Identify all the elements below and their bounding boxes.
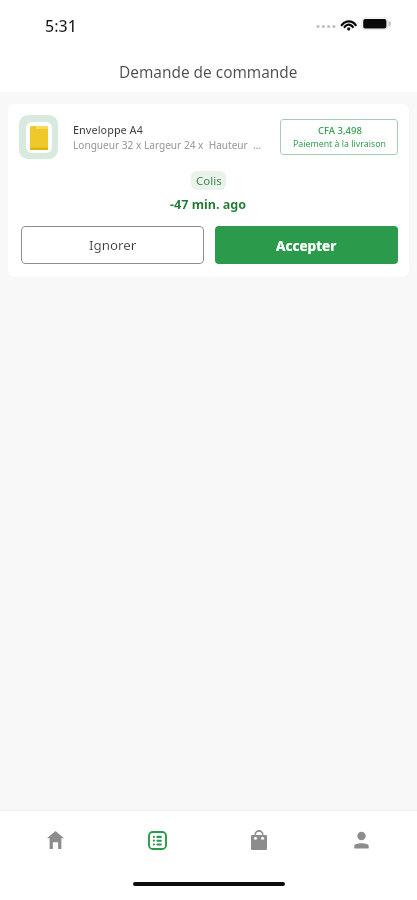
button[interactable]: Shop xyxy=(208,811,310,869)
staticText: Enveloppe A4 xyxy=(73,122,143,137)
button[interactable]: Accepter xyxy=(215,226,398,264)
staticText: Colis xyxy=(196,173,222,189)
staticText: Ignorer xyxy=(89,236,137,254)
staticText: Longueur 32 x Largeur 24 x Hauteur … xyxy=(73,138,262,152)
staticText: Paiement à la livraison xyxy=(293,138,386,150)
staticText: CFA 3,498 xyxy=(318,124,362,137)
staticText: -47 min. ago xyxy=(170,196,247,213)
button[interactable]: Home xyxy=(5,811,106,869)
button[interactable]: Orders xyxy=(106,811,208,869)
staticText: Accepter xyxy=(276,236,337,255)
button[interactable]: Profile xyxy=(310,811,412,869)
button[interactable]: Ignorer xyxy=(21,226,204,264)
staticText: Demande de commande xyxy=(119,62,298,83)
staticText: 5:31 xyxy=(45,15,77,37)
